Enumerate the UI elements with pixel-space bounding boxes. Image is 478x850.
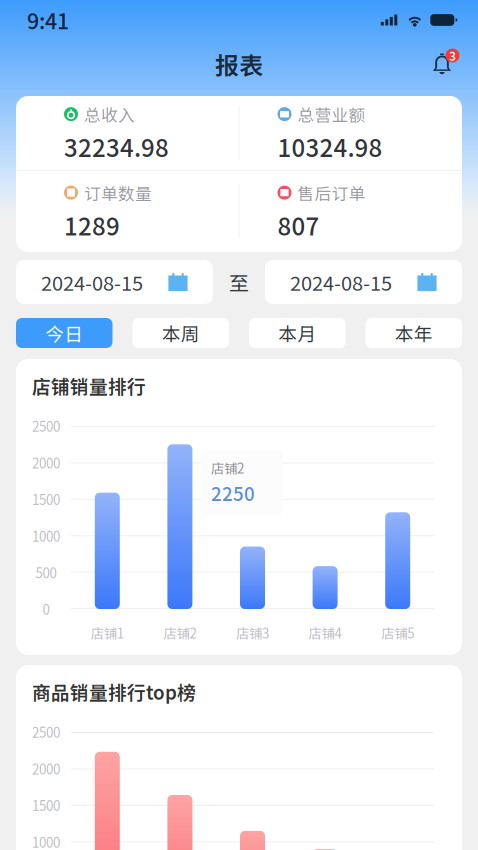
button[interactable]: 2024-08-15 [16,260,213,304]
staticText: 总收入 [84,102,135,126]
staticText: 报表 [215,47,263,81]
staticText: 1500 [32,490,60,509]
staticText: 店铺销量排行 [32,372,146,399]
staticText: 2250 [211,479,255,506]
staticText: 订单数量 [84,181,152,205]
staticText: 店铺5 [381,623,414,642]
staticText: 本年 [395,319,433,346]
staticText: 2000 [32,453,60,472]
staticText: 32234.98 [64,129,169,164]
staticText: 售后订单 [297,181,365,205]
staticText: 店铺3 [236,623,269,642]
staticText: 2500 [32,722,60,742]
staticText: 807 [277,208,319,242]
staticText: 500 [35,563,56,582]
staticText: 商品销量排行top榜 [32,678,196,705]
button[interactable]: 本周 [132,318,229,348]
staticText: 本月 [278,319,316,346]
staticText: 9:41 [27,5,69,35]
staticText: 0 [42,599,49,619]
staticText: 10324.98 [277,129,382,164]
staticText: 2500 [32,416,60,436]
staticText: 1000 [32,832,60,850]
button[interactable]: 今日 [16,318,112,348]
staticText: 至 [229,267,249,296]
staticText: 1000 [32,526,60,545]
staticText: 本周 [162,319,200,346]
staticText: 2000 [32,759,60,778]
staticText: 2024-08-15 [290,267,392,296]
staticText: 店铺2 [211,458,244,477]
staticText: 今日 [45,319,83,346]
staticText: 2024-08-15 [41,267,143,296]
staticText: 1289 [64,208,120,242]
staticText: 店铺4 [309,623,342,642]
button[interactable]: 本年 [365,318,462,348]
button[interactable]: 通知 [422,46,462,82]
button[interactable]: 2024-08-15 [265,260,462,304]
staticText: 1500 [32,796,60,815]
button[interactable]: 本月 [249,318,345,348]
staticText: 店铺2 [163,623,196,642]
staticText: 3 [449,47,456,64]
staticText: 店铺1 [91,623,124,642]
staticText: 总营业额 [297,102,365,126]
